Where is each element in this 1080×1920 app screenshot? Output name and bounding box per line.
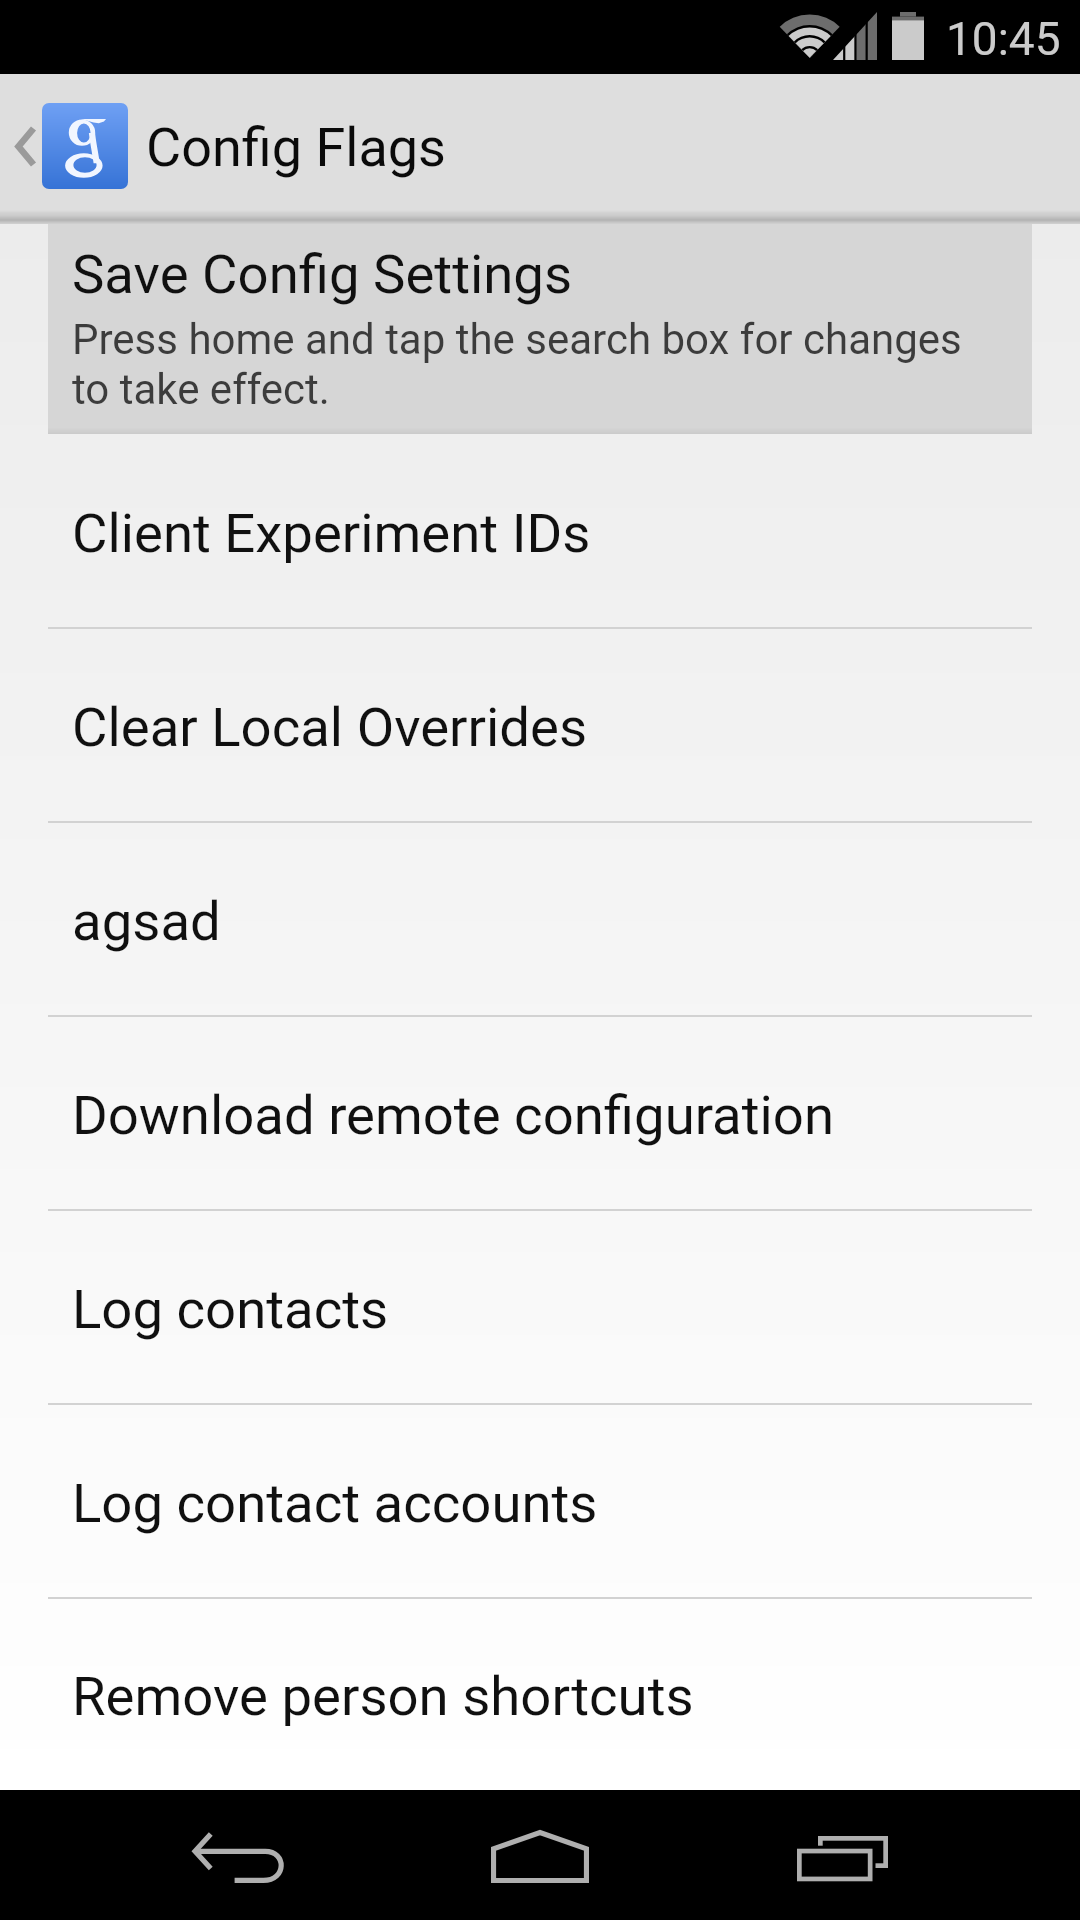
button[interactable]: Clear Local Overrides [0,628,1080,822]
button[interactable]: Log contacts [0,1210,1080,1404]
button[interactable]: Client Experiment IDs [0,434,1080,628]
staticText: Client Experiment IDs [72,501,591,565]
button[interactable]: Back [90,1790,390,1920]
button[interactable]: agsad [0,822,1080,1016]
staticText: agsad [72,889,221,953]
button[interactable]: Log contact accounts [0,1404,1080,1598]
staticText: Download remote configuration [72,1083,834,1147]
staticText: Remove person shortcuts [72,1664,694,1728]
button[interactable]: Save Config Settings [0,218,1080,434]
staticText: Press home and tap the search box for ch… [72,314,1008,414]
staticText: Log contacts [72,1277,389,1341]
staticText: Config Flags [146,116,446,179]
button[interactable]: Remove person shortcuts [0,1598,1080,1790]
staticText: Clear Local Overrides [72,695,588,759]
button[interactable]: Navigate up [0,74,146,218]
staticText: 10:45 [946,12,1061,66]
button[interactable]: Download remote configuration [0,1016,1080,1210]
staticText: Save Config Settings [72,242,573,306]
button[interactable]: Home [390,1790,690,1920]
button[interactable]: Recent apps [690,1790,990,1920]
staticText: Log contact accounts [72,1471,598,1535]
